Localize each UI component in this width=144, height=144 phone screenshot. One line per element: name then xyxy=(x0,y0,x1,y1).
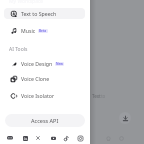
button[interactable]: TikTok xyxy=(61,133,71,143)
staticText: Voice Isolator xyxy=(21,92,55,99)
button[interactable]: LinkedIn xyxy=(20,133,30,143)
staticText: Text xyxy=(92,93,101,99)
staticText: New xyxy=(56,62,63,66)
staticText: to xyxy=(101,93,106,99)
button[interactable]: YouTube xyxy=(48,133,58,143)
button[interactable]: Instagram xyxy=(75,133,85,143)
button[interactable]: Discord xyxy=(5,133,15,143)
staticText: Voice Clone xyxy=(21,75,50,82)
staticText: Access API xyxy=(31,117,59,124)
button[interactable]: Text to Speech xyxy=(4,8,85,19)
button[interactable]: Voice Clone xyxy=(4,73,85,84)
staticText: Beta xyxy=(39,29,47,33)
button[interactable]: History xyxy=(117,134,126,143)
button[interactable]: Home xyxy=(104,134,113,143)
staticText: Music xyxy=(21,27,36,34)
button[interactable]: Music xyxy=(4,25,85,36)
staticText: AI Tools xyxy=(9,46,28,53)
button[interactable]: Voice Design xyxy=(4,58,85,69)
button[interactable]: Download xyxy=(119,112,131,124)
button[interactable]: Access API xyxy=(5,114,85,127)
button[interactable]: X xyxy=(33,133,43,143)
staticText: Text to Speech xyxy=(21,10,57,17)
staticText: Voice Design xyxy=(21,60,53,67)
button[interactable]: Voice Isolator xyxy=(4,90,85,101)
